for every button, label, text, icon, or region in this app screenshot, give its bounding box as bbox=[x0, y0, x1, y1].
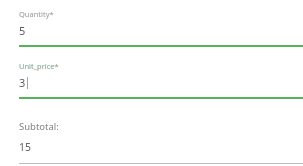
staticText: 15 bbox=[19, 140, 32, 154]
staticText: Subtotal: bbox=[19, 120, 59, 133]
button[interactable]: Quantity* bbox=[0, 9, 303, 47]
staticText: Quantity* bbox=[19, 9, 54, 19]
staticText: Unit_price* bbox=[19, 61, 59, 71]
button[interactable]: Unit_price* bbox=[0, 61, 303, 99]
staticText: 3 bbox=[19, 75, 26, 90]
staticText: 5 bbox=[19, 23, 26, 38]
button[interactable]: Subtotal: bbox=[0, 120, 303, 164]
